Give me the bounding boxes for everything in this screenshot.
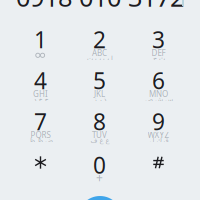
staticText: JKL — [94, 89, 105, 99]
staticText: 0918 010 3172 — [16, 0, 184, 14]
button[interactable]: Call — [78, 196, 122, 200]
button[interactable]: 8 — [71, 101, 127, 142]
staticText: 2 — [93, 24, 106, 54]
staticText: 3 — [152, 24, 165, 54]
button[interactable]: 5 — [71, 60, 127, 101]
button[interactable]: 0 — [71, 144, 127, 185]
staticText: TUV — [92, 130, 107, 140]
button[interactable]: 3 — [130, 19, 186, 60]
staticText: ح خ د — [33, 96, 48, 103]
button[interactable]: Pound — [130, 142, 186, 183]
staticText: 0 — [93, 150, 106, 180]
staticText: ذ ر ز — [93, 96, 106, 103]
staticText: ع غ ف — [90, 137, 109, 144]
staticText: 1 — [34, 24, 47, 54]
staticText: ق ك ل — [149, 137, 168, 144]
staticText: 9 — [152, 106, 165, 136]
button[interactable]: 6 — [130, 60, 186, 101]
button[interactable]: 2 — [71, 19, 127, 60]
staticText: س ش ص — [144, 96, 172, 103]
staticText: 8 — [93, 106, 106, 136]
staticText: WXYZ — [147, 130, 169, 140]
staticText: ض ط ظ — [28, 137, 52, 144]
button[interactable]: 1 — [12, 19, 68, 60]
staticText: ا ب پ ت — [86, 55, 112, 62]
staticText: ث ج — [152, 55, 164, 62]
button[interactable]: 9 — [130, 101, 186, 142]
button[interactable]: 4 — [12, 60, 68, 101]
staticText: + — [96, 169, 103, 185]
staticText: DEF — [151, 48, 165, 58]
staticText: 4 — [34, 65, 47, 95]
staticText: GHI — [33, 89, 48, 99]
staticText: 7 — [34, 106, 47, 136]
staticText: MNO — [149, 89, 168, 99]
staticText: 6 — [152, 65, 165, 95]
button[interactable]: 7 — [12, 101, 68, 142]
button[interactable]: Star — [12, 142, 68, 183]
staticText: PQRS — [30, 130, 50, 140]
staticText: 5 — [93, 65, 106, 95]
staticText: ABC — [92, 48, 107, 58]
